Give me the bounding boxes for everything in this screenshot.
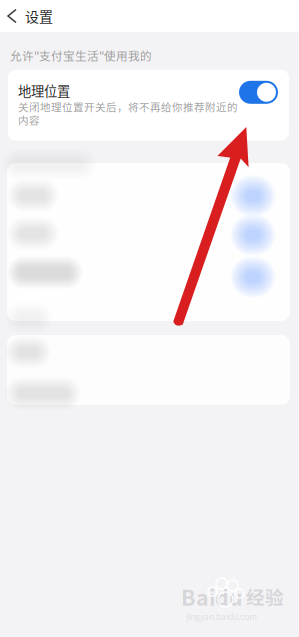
- staticText: 内容: [18, 112, 40, 128]
- staticText: 允许"支付宝生活"使用我的: [10, 47, 152, 64]
- staticText: 设置: [25, 6, 53, 26]
- staticText: 地理位置: [18, 81, 70, 100]
- staticText: 经验: [246, 583, 284, 610]
- staticText: Baidu: [181, 581, 243, 612]
- staticText: 关闭地理位置开关后，将不再给你推荐附近的: [18, 99, 238, 114]
- button[interactable]: 地理位置开关: [239, 81, 278, 104]
- staticText: jingyan.baidu.com: [186, 610, 257, 622]
- button[interactable]: 返回: [0, 0, 25, 31]
